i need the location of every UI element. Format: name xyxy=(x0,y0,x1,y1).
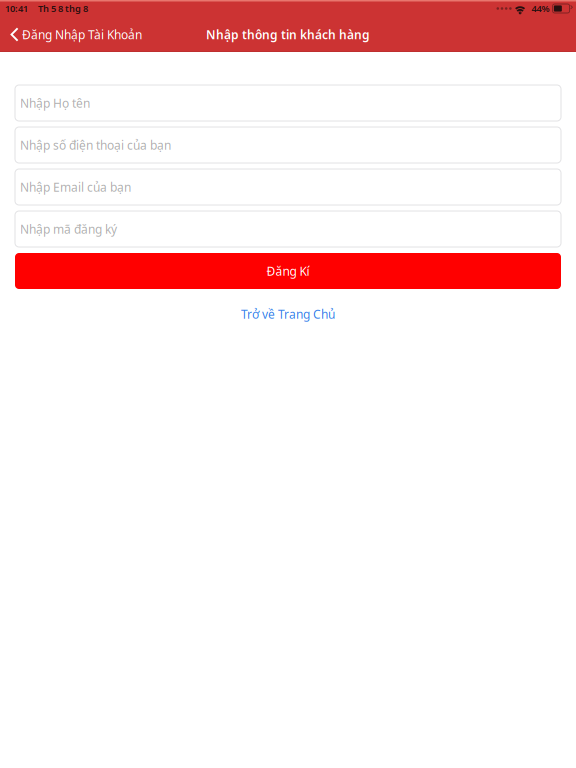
staticText: Th 5 8 thg 8 xyxy=(28,2,88,15)
button[interactable]: Nhập mã đăng ký xyxy=(15,211,561,247)
staticText: Nhập số điện thoại của bạn xyxy=(20,137,171,153)
button[interactable]: Đăng Kí xyxy=(15,253,561,289)
button[interactable]: Nhập Email của bạn xyxy=(15,169,561,205)
staticText: 10:41 xyxy=(5,2,28,15)
button[interactable]: Trở về Trang Chủ xyxy=(15,295,561,333)
staticText: Trở về Trang Chủ xyxy=(241,306,335,322)
staticText: Đăng Kí xyxy=(266,263,309,279)
button[interactable]: Back to Đăng Nhập Tài Khoản xyxy=(0,17,148,52)
button[interactable]: Nhập Họ tên xyxy=(15,85,561,121)
staticText: Đăng Nhập Tài Khoản xyxy=(22,26,142,42)
staticText: 44% xyxy=(532,2,550,15)
staticText: Nhập thông tin khách hàng xyxy=(206,26,370,42)
staticText: Nhập Email của bạn xyxy=(20,179,131,195)
button[interactable]: Nhập số điện thoại của bạn xyxy=(15,127,561,163)
staticText: Nhập mã đăng ký xyxy=(20,221,117,237)
staticText: Nhập Họ tên xyxy=(20,95,90,111)
